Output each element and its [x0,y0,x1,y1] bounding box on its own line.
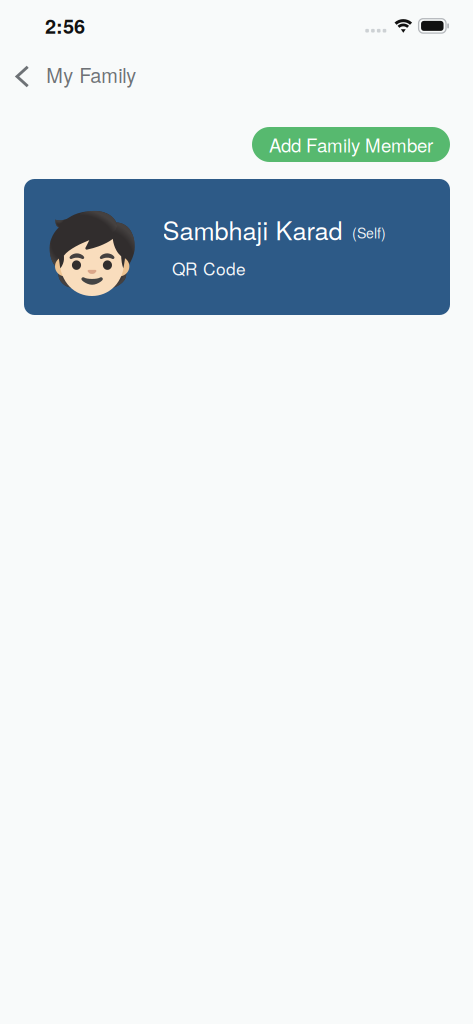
staticText: Add Family Member [269,131,433,158]
button[interactable]: Add Family Member [252,127,450,162]
staticText: (Self) [352,222,386,242]
staticText: QR Code [172,255,246,280]
staticText: 2:56 [45,11,85,40]
staticText: My Family [46,60,136,89]
staticText: Sambhaji Karad [162,211,342,248]
button[interactable]: Back to My Family [0,52,236,99]
staticText: 🧒🏻 [44,208,140,299]
button[interactable]: 🧒🏻 [24,179,450,315]
